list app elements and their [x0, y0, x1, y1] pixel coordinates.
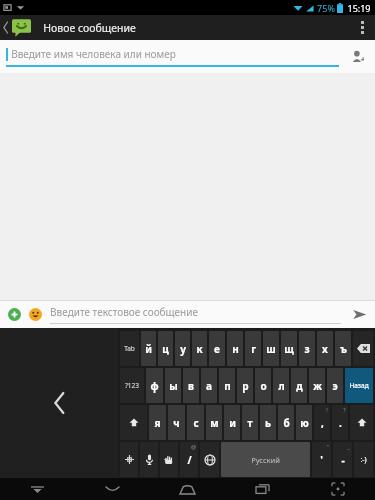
- button[interactable]: с: [187, 405, 204, 440]
- button[interactable]: ю: [296, 405, 312, 440]
- button[interactable]: settings: [120, 442, 138, 477]
- button[interactable]: ц: [158, 331, 173, 366]
- button[interactable]: ч: [168, 405, 185, 440]
- button[interactable]: р: [237, 368, 253, 403]
- button[interactable]: э: [327, 368, 343, 403]
- button[interactable]: -: [333, 442, 352, 477]
- staticText: 75%: [317, 2, 335, 14]
- staticText: х: [322, 342, 328, 356]
- staticText: Русский: [251, 455, 280, 465]
- button[interactable]: Collapse keyboard: [0, 328, 118, 478]
- staticText: л: [278, 379, 285, 393]
- button[interactable]: м: [206, 405, 222, 440]
- button[interactable]: ф: [146, 368, 163, 403]
- button[interactable]: More options: [349, 15, 375, 40]
- button[interactable]: Emoji: [25, 304, 45, 324]
- staticText: ': [320, 453, 323, 467]
- staticText: Новое сообщение: [43, 21, 136, 35]
- button[interactable]: hand: [160, 442, 178, 477]
- staticText: а: [206, 379, 212, 393]
- button[interactable]: Hide keyboard: [0, 478, 75, 500]
- button[interactable]: о: [255, 368, 271, 403]
- staticText: щ: [284, 342, 294, 356]
- button[interactable]: е: [209, 331, 225, 366]
- staticText: ч: [173, 416, 180, 430]
- staticText: с: [193, 416, 199, 430]
- button[interactable]: щ: [281, 331, 297, 366]
- button[interactable]: mic: [140, 442, 158, 477]
- button[interactable]: ш: [263, 331, 279, 366]
- staticText: Tab: [124, 344, 135, 353]
- staticText: @: [191, 443, 196, 450]
- button[interactable]: я: [149, 405, 166, 440]
- button[interactable]: х: [317, 331, 333, 366]
- staticText: е: [214, 342, 220, 356]
- button[interactable]: ж: [309, 368, 325, 403]
- button[interactable]: б: [278, 405, 294, 440]
- staticText: 15:19: [347, 2, 371, 14]
- button[interactable]: п: [219, 368, 235, 403]
- staticText: Введите имя человека или номер: [11, 47, 176, 61]
- staticText: ?: [343, 406, 346, 413]
- staticText: ь: [265, 416, 271, 430]
- staticText: я: [154, 416, 161, 430]
- staticText: й: [145, 342, 152, 356]
- staticText: _: [347, 443, 350, 450]
- button[interactable]: у: [175, 331, 190, 366]
- button[interactable]: Attach: [4, 304, 24, 324]
- staticText: к: [196, 342, 203, 356]
- button[interactable]: ,: [314, 405, 330, 440]
- staticText: р: [242, 379, 249, 393]
- button[interactable]: globe: [200, 442, 219, 477]
- button[interactable]: Screenshot: [300, 478, 375, 500]
- button[interactable]: shift: [120, 405, 147, 440]
- button[interactable]: и: [224, 405, 240, 440]
- button[interactable]: .: [332, 405, 348, 440]
- staticText: и: [229, 416, 236, 430]
- button[interactable]: Send: [347, 302, 371, 326]
- button[interactable]: del: [353, 331, 373, 366]
- button[interactable]: Tab: [120, 331, 139, 366]
- button[interactable]: л: [273, 368, 289, 403]
- staticText: ш: [266, 342, 276, 356]
- button[interactable]: /: [180, 442, 198, 477]
- staticText: /: [187, 453, 192, 467]
- button[interactable]: ы: [165, 368, 181, 403]
- staticText: п: [224, 379, 231, 393]
- staticText: о: [260, 379, 267, 393]
- button[interactable]: а: [201, 368, 217, 403]
- button[interactable]: Back: [75, 478, 150, 500]
- button[interactable]: shift: [350, 405, 373, 440]
- button[interactable]: Назад: [345, 368, 373, 403]
- button[interactable]: Back: [0, 15, 33, 40]
- button[interactable]: ': [312, 442, 331, 477]
- staticText: г: [251, 342, 256, 356]
- button[interactable]: к: [192, 331, 207, 366]
- button[interactable]: :-): [354, 442, 373, 477]
- button[interactable]: д: [291, 368, 307, 403]
- button[interactable]: т: [242, 405, 258, 440]
- button[interactable]: й: [141, 331, 156, 366]
- staticText: .: [339, 416, 342, 430]
- button[interactable]: ?123: [120, 368, 144, 403]
- staticText: :-): [360, 455, 367, 465]
- button[interactable]: Recent apps: [225, 478, 300, 500]
- staticText: ы: [169, 379, 178, 393]
- staticText: ю: [300, 416, 309, 430]
- staticText: ": [326, 443, 329, 450]
- button[interactable]: н: [227, 331, 243, 366]
- button[interactable]: Add contact: [345, 44, 371, 70]
- button[interactable]: Введите имя человека или номер: [6, 47, 339, 67]
- button[interactable]: в: [183, 368, 199, 403]
- button[interactable]: ъ: [335, 331, 351, 366]
- staticText: б: [283, 416, 290, 430]
- button[interactable]: ь: [260, 405, 276, 440]
- button[interactable]: Русский: [221, 442, 310, 477]
- staticText: ,: [321, 416, 324, 430]
- button[interactable]: Home: [150, 478, 225, 500]
- button[interactable]: з: [299, 331, 315, 366]
- staticText: э: [332, 379, 338, 393]
- staticText: у: [180, 342, 186, 356]
- button[interactable]: г: [245, 331, 261, 366]
- button[interactable]: Введите текстовое сообщение: [50, 305, 341, 324]
